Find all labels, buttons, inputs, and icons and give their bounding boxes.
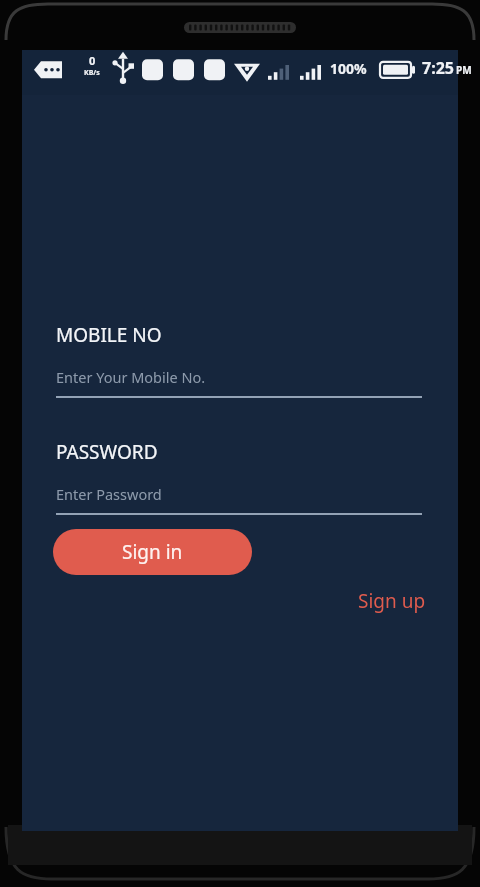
staticText: 7:25	[422, 57, 454, 79]
staticText: Sign up	[358, 588, 426, 614]
staticText: Sign in	[122, 539, 183, 565]
staticText: 0	[89, 53, 96, 68]
staticText: KB/s	[84, 68, 100, 78]
button[interactable]: Sign in	[53, 529, 252, 575]
staticText: PASSWORD	[56, 439, 158, 465]
staticText: Enter Your Mobile No.	[56, 367, 206, 387]
staticText: Enter Password	[56, 484, 162, 504]
staticText: 100%	[330, 59, 367, 78]
staticText: MOBILE NO	[56, 322, 162, 348]
staticText: PM	[456, 63, 472, 77]
button[interactable]: Sign up	[354, 586, 430, 616]
